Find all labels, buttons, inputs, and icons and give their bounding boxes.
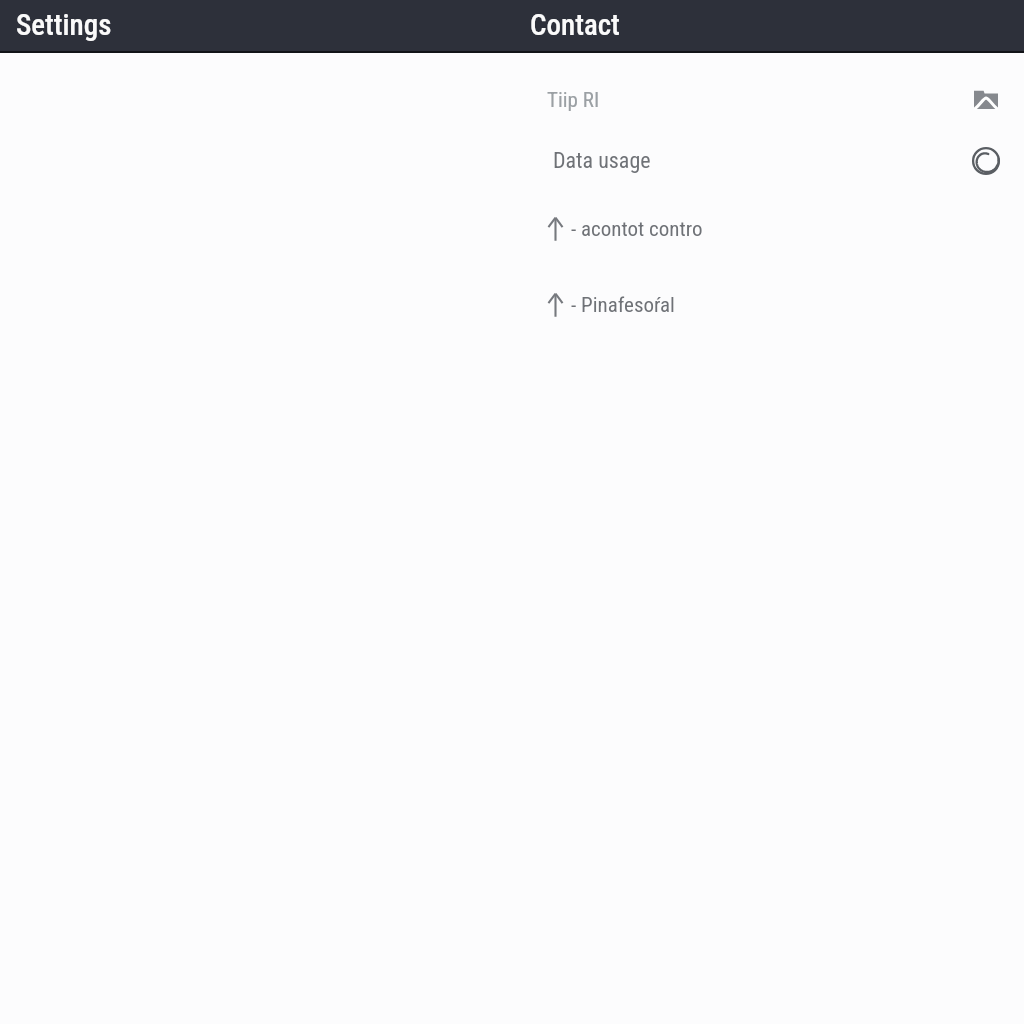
button[interactable]: - acontot contro: [548, 215, 703, 243]
staticText: Tiip RI: [547, 88, 600, 113]
staticText: Data usage: [553, 148, 651, 174]
button[interactable]: Data usage: [537, 143, 937, 177]
button[interactable]: Photos: [968, 84, 1004, 114]
button[interactable]: - Pinafesoŕal: [548, 291, 675, 319]
staticText: - Pinafesoŕal: [571, 293, 675, 318]
button[interactable]: Sync: [966, 141, 1006, 181]
button[interactable]: Settings: [16, 8, 112, 42]
button[interactable]: Tiip RI: [531, 83, 931, 115]
staticText: Settings: [16, 8, 112, 42]
button[interactable]: Contact: [530, 8, 620, 42]
staticText: Contact: [530, 8, 620, 42]
staticText: - acontot contro: [571, 217, 703, 242]
